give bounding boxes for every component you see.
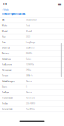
staticText: Year [2,36,6,38]
staticText: Battery [2,52,9,54]
staticText: Long Range [26,41,35,43]
staticText: Dual Motor [26,47,35,49]
staticText: ▮▮▮ [58,3,61,5]
staticText: 9:41 [3,3,7,5]
staticText: Vehicle Category [2,80,15,82]
staticText: Transmission [2,97,13,99]
staticText: ‹ [2,9,3,11]
staticText: 131 MPGe [26,64,34,66]
staticText: Exterior Color [2,108,13,110]
staticText: 389 lb-ft [26,75,33,77]
staticText: 235/40R19 [26,102,35,105]
staticText: 5 [26,86,27,88]
staticText: 5YJ3E1EA7LF [26,19,37,21]
staticText: Vehicles [3,9,9,11]
button[interactable]: ‹ [2,9,9,11]
staticText: 2023 [26,36,30,38]
staticText: Horsepower [2,69,12,71]
staticText: Torque [2,75,8,77]
staticText: 82 kWh [26,52,32,54]
staticText: Vehicle Specifications [2,13,25,15]
staticText: Fuel Type [2,91,9,93]
staticText: Sedan [26,58,31,60]
staticText: Model [2,30,7,32]
staticText: VIN [2,19,4,21]
staticText: Electric [26,80,32,82]
staticText: Automatic [26,97,35,99]
staticText: Seats [2,86,7,88]
staticText: 346 hp [26,69,31,71]
staticText: Fuel Economy [2,64,12,66]
staticText: Model 3 [26,30,32,32]
staticText: Trim [2,41,6,43]
staticText: Tire Size [2,102,8,105]
staticText: Make [2,25,7,27]
staticText: Tesla [26,25,30,27]
staticText: Drivetrain [2,47,10,49]
staticText: Electric [26,91,32,93]
staticText: Vehicle Type [2,58,11,60]
staticText: Pearl White [26,108,35,110]
